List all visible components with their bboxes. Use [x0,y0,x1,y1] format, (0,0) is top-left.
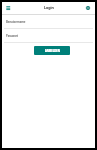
staticText: ANMELDEN [45,49,60,53]
button[interactable]: Benutzername [2,18,95,26]
button[interactable]: ANMELDEN [34,46,70,55]
staticText: Login [44,5,54,10]
button[interactable]: Passwort [2,32,95,40]
staticText: Benutzername [6,20,26,24]
button[interactable]: Menu [2,2,14,14]
button[interactable]: Settings [82,2,94,14]
staticText: Benutzername [6,20,26,24]
staticText: Login [44,5,54,10]
staticText: Passwort [6,34,18,38]
staticText: Passwort [6,34,18,38]
staticText: ANMELDEN [45,49,60,53]
